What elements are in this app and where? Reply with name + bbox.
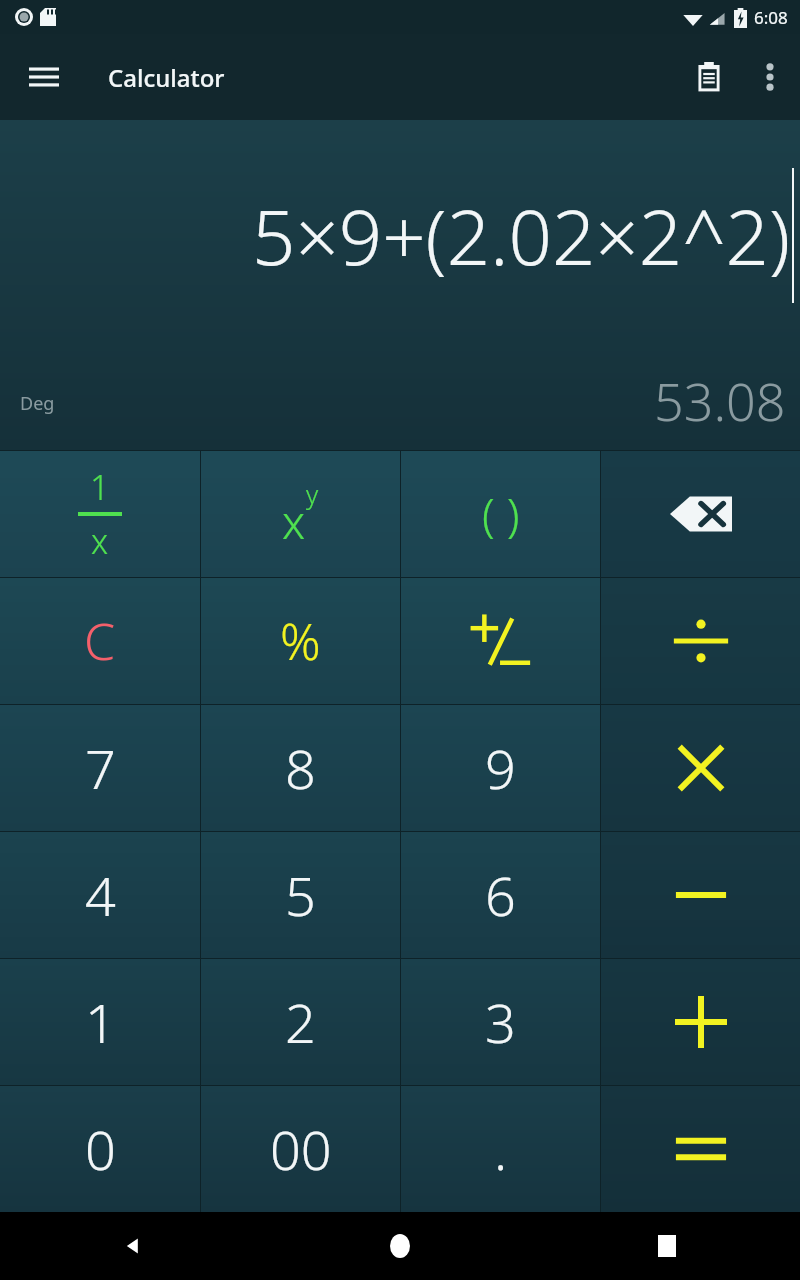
staticText: 3 bbox=[485, 985, 516, 1059]
button[interactable]: 3 bbox=[401, 959, 600, 1085]
staticText: 0 bbox=[85, 1112, 116, 1186]
staticText: 7 bbox=[85, 731, 116, 805]
button[interactable]: 9 bbox=[401, 705, 600, 831]
button[interactable]: Equals bbox=[601, 1086, 800, 1212]
staticText: 1 bbox=[85, 985, 116, 1059]
button[interactable]: Reciprocal bbox=[0, 451, 200, 577]
staticText: Calculator bbox=[108, 61, 225, 94]
button[interactable]: Recents bbox=[533, 1212, 800, 1280]
staticText: 6 bbox=[485, 858, 516, 932]
button[interactable]: % bbox=[201, 578, 400, 704]
staticText: 5×9+(2.02×2^2) bbox=[251, 184, 790, 288]
button[interactable]: Menu bbox=[10, 43, 78, 111]
staticText: 00 bbox=[270, 1112, 332, 1186]
staticText: 1 bbox=[90, 464, 110, 510]
button[interactable]: Backspace bbox=[601, 451, 800, 577]
button[interactable]: C bbox=[0, 578, 200, 704]
button[interactable]: More options bbox=[740, 47, 800, 107]
button[interactable]: . bbox=[401, 1086, 600, 1212]
staticText: 8 bbox=[285, 731, 316, 805]
staticText: 5 bbox=[285, 858, 316, 932]
button[interactable]: 7 bbox=[0, 705, 200, 831]
button[interactable]: 2 bbox=[201, 959, 400, 1085]
staticText: . bbox=[494, 1112, 508, 1186]
staticText: x bbox=[91, 518, 109, 564]
button[interactable]: Back bbox=[0, 1212, 266, 1280]
staticText: ( ) bbox=[482, 483, 520, 546]
button[interactable]: Plus bbox=[601, 959, 800, 1085]
button[interactable]: 5 bbox=[201, 832, 400, 958]
button[interactable]: History bbox=[678, 46, 740, 108]
button[interactable]: 1 bbox=[0, 959, 200, 1085]
button[interactable]: 8 bbox=[201, 705, 400, 831]
button[interactable]: Minus bbox=[601, 832, 800, 958]
button[interactable]: 0 bbox=[0, 1086, 200, 1212]
staticText: 53.08 bbox=[654, 365, 786, 436]
button[interactable]: Plus minus bbox=[401, 578, 600, 704]
button[interactable]: Power bbox=[201, 451, 400, 577]
button[interactable]: Divide bbox=[601, 578, 800, 704]
staticText: 6:08 bbox=[754, 6, 788, 29]
staticText: 9 bbox=[485, 731, 516, 805]
staticText: 4 bbox=[85, 858, 116, 932]
button[interactable]: ( ) bbox=[401, 451, 600, 577]
staticText: C bbox=[84, 607, 116, 675]
staticText: % bbox=[280, 607, 321, 675]
button[interactable]: 4 bbox=[0, 832, 200, 958]
staticText: x bbox=[282, 490, 306, 553]
staticText: Deg bbox=[20, 391, 55, 416]
staticText: y bbox=[306, 476, 319, 511]
button[interactable]: 6 bbox=[401, 832, 600, 958]
button[interactable]: 00 bbox=[201, 1086, 400, 1212]
staticText: 2 bbox=[285, 985, 316, 1059]
button[interactable]: Home bbox=[266, 1212, 533, 1280]
button[interactable]: Multiply bbox=[601, 705, 800, 831]
